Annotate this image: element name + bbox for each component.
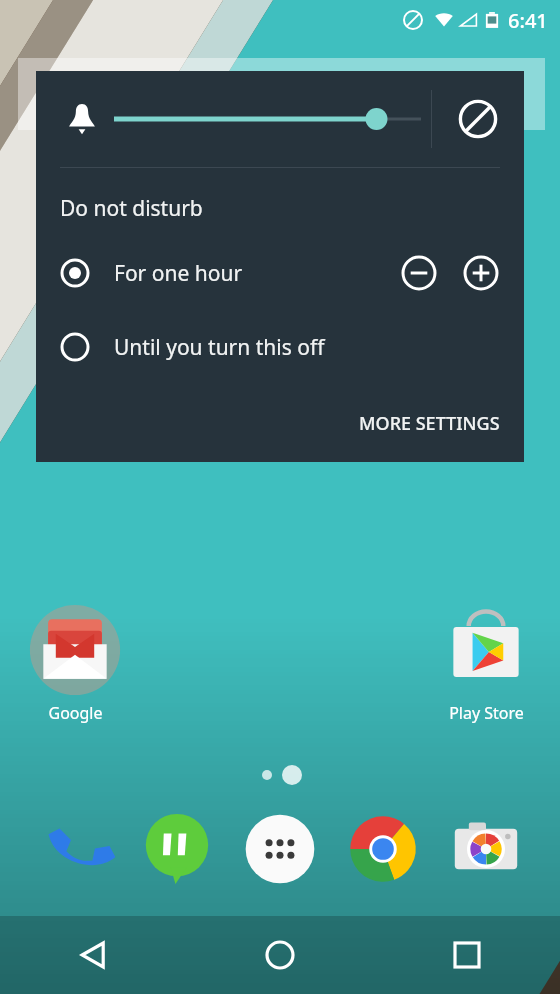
button[interactable]: MORE SETTINGS <box>349 403 510 444</box>
button[interactable]: Phone <box>30 805 118 893</box>
button[interactable]: Until you turn this off <box>36 315 524 379</box>
button[interactable]: Play Store <box>433 602 539 724</box>
staticText: Play Store <box>449 702 524 724</box>
staticText: Until you turn this off <box>114 333 325 362</box>
button[interactable]: Decrease duration <box>388 242 450 304</box>
staticText: MORE SETTINGS <box>359 411 500 436</box>
staticText: 6:41 <box>508 7 548 34</box>
staticText: Do not disturb <box>60 194 203 223</box>
button[interactable]: Back <box>57 919 129 991</box>
button[interactable]: Increase duration <box>450 242 512 304</box>
button[interactable]: Chrome <box>339 805 427 893</box>
button[interactable]: Camera <box>442 805 530 893</box>
staticText: Google <box>48 702 103 724</box>
button[interactable]: For one hour <box>36 241 388 305</box>
button[interactable]: Recent apps <box>431 919 503 991</box>
button[interactable]: Google <box>22 602 128 724</box>
button[interactable]: Volume slider <box>114 99 421 139</box>
button[interactable]: Do not disturb <box>432 71 524 167</box>
button[interactable]: Ringer volume <box>54 91 110 147</box>
button[interactable]: Apps <box>236 805 324 893</box>
button[interactable]: Hangouts <box>133 805 221 893</box>
staticText: For one hour <box>114 259 243 288</box>
button[interactable]: Home <box>244 919 316 991</box>
